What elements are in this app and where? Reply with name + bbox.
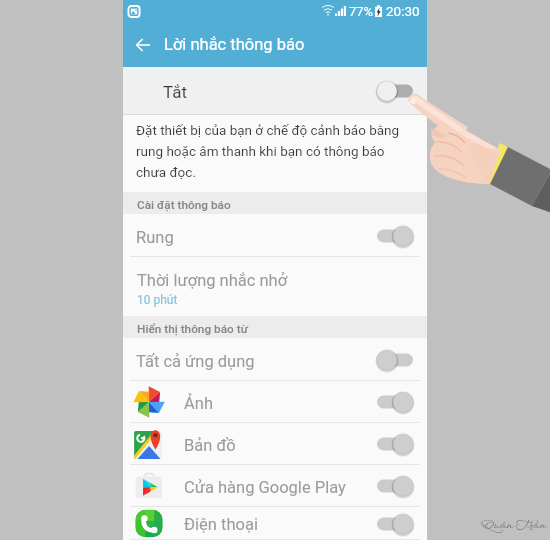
staticText: Rung — [136, 228, 174, 247]
button[interactable]: Toggle Cửa hàng Google Play — [377, 474, 413, 498]
button[interactable]: Toggle Tất cả ứng dụng — [377, 348, 413, 372]
staticText: Thời lượng nhắc nhở — [137, 271, 288, 290]
staticText: Đặt thiết bị của bạn ở chế độ cảnh báo b… — [136, 122, 402, 180]
button[interactable]: Rung — [123, 214, 427, 257]
staticText: Quân Trần — [481, 517, 546, 534]
button[interactable]: Tắt — [123, 67, 427, 114]
staticText: 20:30 — [386, 3, 420, 19]
button[interactable]: Thời lượng nhắc nhở — [123, 257, 427, 316]
staticText: Bản đồ — [184, 436, 236, 455]
button[interactable]: Bản đồ — [123, 423, 427, 465]
button[interactable]: Toggle Điện thoại — [377, 512, 413, 536]
staticText: Cài đặt thông báo — [137, 198, 231, 212]
button[interactable]: Toggle Rung — [377, 224, 413, 248]
staticText: Ảnh — [184, 394, 213, 413]
button[interactable]: Cửa hàng Google Play — [123, 465, 427, 507]
staticText: Tắt — [163, 82, 188, 102]
staticText: Điện thoại — [184, 515, 258, 534]
button[interactable]: Tất cả ứng dụng — [123, 338, 427, 381]
staticText: Cửa hàng Google Play — [184, 478, 346, 497]
button[interactable]: Toggle Bản đồ — [377, 432, 413, 456]
button[interactable]: Back — [123, 25, 163, 65]
button[interactable]: Toggle notification reminder — [377, 79, 413, 103]
button[interactable]: Ảnh — [123, 381, 427, 423]
staticText: 77% — [349, 4, 374, 19]
staticText: Lời nhắc thông báo — [164, 35, 305, 54]
staticText: Hiển thị thông báo từ — [137, 322, 248, 336]
staticText: Tất cả ứng dụng — [136, 352, 255, 371]
button[interactable]: Toggle Ảnh — [377, 390, 413, 414]
staticText: 10 phút — [137, 293, 178, 307]
button[interactable]: Điện thoại — [123, 507, 427, 540]
